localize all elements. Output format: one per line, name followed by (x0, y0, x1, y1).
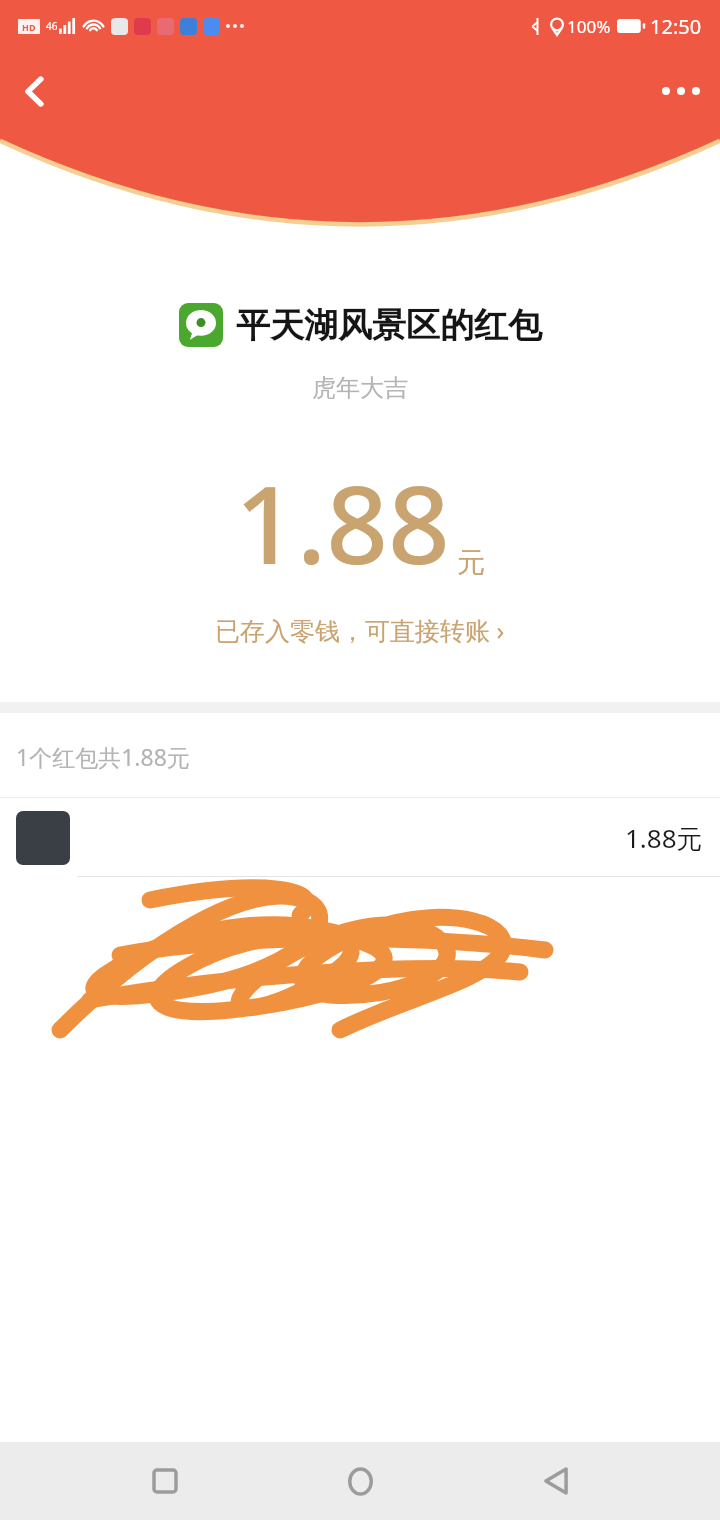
button[interactable]: Back (6, 62, 64, 120)
staticText: 1.88元 (625, 820, 703, 856)
staticText: 已存入零钱，可直接转账 › (215, 613, 505, 647)
staticText: 12:50 (650, 13, 702, 40)
staticText: 46 (46, 19, 58, 33)
staticText: 1个红包共1.88元 (16, 741, 190, 772)
button[interactable]: 已存入零钱，可直接转账 › (0, 608, 720, 652)
staticText: 1.88 (235, 449, 450, 596)
button[interactable]: Recents (134, 1450, 196, 1512)
staticText: HD (22, 21, 36, 33)
button[interactable]: Home (329, 1450, 391, 1512)
staticText: 虎年大吉 (0, 373, 720, 403)
button[interactable]: Back (525, 1450, 587, 1512)
staticText: 100% (567, 15, 611, 38)
button[interactable]: 1.88元 (0, 798, 720, 877)
staticText: 元 (457, 545, 485, 580)
button[interactable]: More options (652, 62, 710, 120)
staticText: 平天湖风景区的红包 (236, 304, 542, 347)
